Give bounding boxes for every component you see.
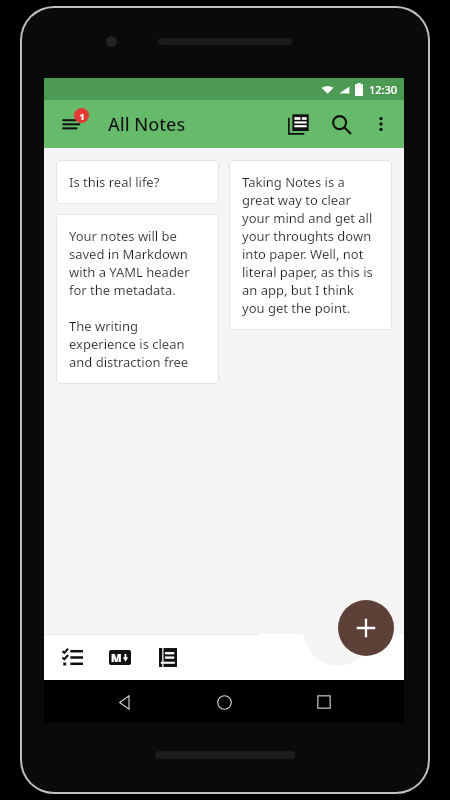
staticText: Is this real life?	[69, 173, 160, 191]
staticText: 12:30	[369, 82, 398, 97]
button[interactable]: New note	[338, 600, 394, 656]
button[interactable]: Search	[320, 103, 362, 145]
staticText: 1	[79, 110, 85, 122]
button[interactable]: Taking Notes is a great way to clear you…	[229, 160, 392, 330]
staticText: Taking Notes is a great way to clear you…	[242, 173, 379, 317]
button[interactable]: Home	[204, 682, 244, 722]
button[interactable]: Checklist	[52, 637, 92, 677]
button[interactable]: Markdown	[100, 637, 140, 677]
button[interactable]: Reader mode	[278, 103, 320, 145]
button[interactable]: Notebook	[148, 637, 188, 677]
staticText: All Notes	[108, 112, 186, 137]
staticText: Your notes will be saved in Markdown wit…	[69, 227, 206, 371]
button[interactable]: Is this real life?	[56, 160, 219, 204]
button[interactable]: Recent apps	[304, 682, 344, 722]
button[interactable]: Back	[104, 682, 144, 722]
staticText: M	[111, 650, 122, 665]
button[interactable]: More options	[362, 105, 400, 143]
button[interactable]: Your notes will be saved in Markdown wit…	[56, 214, 219, 384]
button[interactable]: Open navigation drawer	[50, 102, 94, 146]
